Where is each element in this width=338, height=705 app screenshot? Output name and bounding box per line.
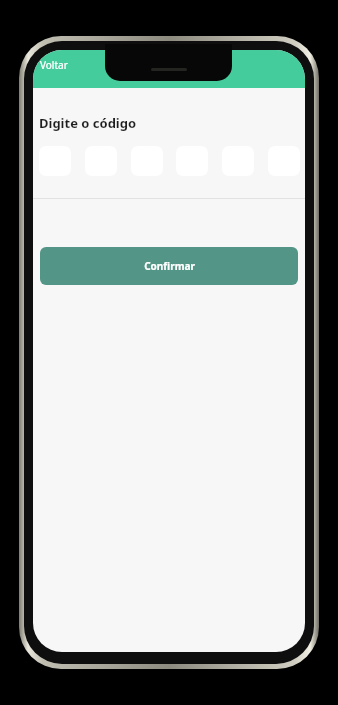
staticText: Digite o código: [39, 114, 137, 132]
staticText: Voltar: [40, 58, 68, 72]
button[interactable]: Voltar: [35, 56, 73, 74]
staticText: Confirmar: [144, 259, 195, 273]
button[interactable]: Confirmar: [40, 247, 298, 285]
